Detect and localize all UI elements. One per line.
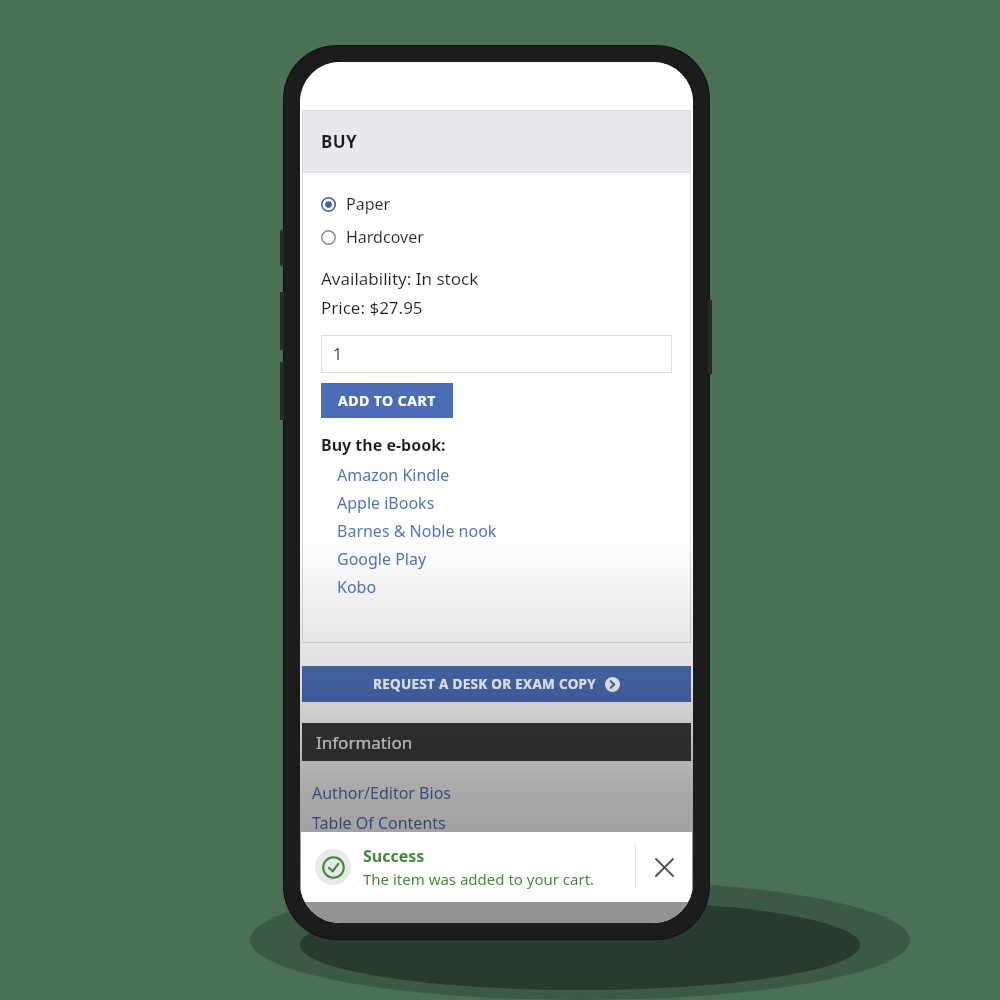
staticText: BUY [321, 130, 357, 153]
button[interactable]: 1 [321, 335, 672, 373]
button[interactable]: Author/Editor Bios [312, 778, 451, 808]
button[interactable]: Close [636, 832, 692, 902]
button[interactable]: Hardcover [321, 224, 424, 250]
staticText: Price: $27.95 [321, 296, 423, 319]
staticText: The item was added to your cart. [363, 869, 595, 889]
staticText: Paper [346, 193, 391, 215]
staticText: Amazon Kindle [337, 464, 450, 486]
staticText: Apple iBooks [337, 492, 435, 514]
button[interactable]: Rights [312, 838, 360, 868]
button[interactable]: Table Of Contents [312, 808, 446, 838]
button[interactable]: Paper [321, 191, 391, 217]
button[interactable]: Amazon Kindle [337, 461, 450, 489]
button[interactable]: Google Play [337, 545, 427, 573]
staticText: Kobo [337, 576, 377, 598]
staticText: Rights [312, 842, 360, 864]
staticText: Buy the e-book: [321, 434, 446, 456]
staticText: Hardcover [346, 226, 424, 248]
staticText: Author/Editor Bios [312, 782, 451, 804]
button[interactable]: Additional Information [312, 868, 484, 898]
staticText: Information [316, 731, 413, 754]
button[interactable]: Apple iBooks [337, 489, 435, 517]
staticText: Google Play [337, 548, 427, 570]
button[interactable]: Barnes & Noble nook [337, 517, 497, 545]
staticText: ADD TO CART [338, 391, 436, 410]
button[interactable]: REQUEST A DESK OR EXAM COPY [302, 666, 691, 702]
button[interactable]: Kobo [337, 573, 377, 601]
staticText: Success [363, 845, 425, 867]
button[interactable]: Information [302, 723, 691, 761]
staticText: Barnes & Noble nook [337, 520, 497, 542]
staticText: Availability: In stock [321, 267, 479, 290]
staticText: REQUEST A DESK OR EXAM COPY [373, 675, 597, 693]
staticText: 1 [333, 343, 343, 365]
button[interactable]: ADD TO CART [321, 383, 453, 418]
staticText: Additional Information [312, 872, 484, 894]
staticText: Table Of Contents [312, 812, 446, 834]
